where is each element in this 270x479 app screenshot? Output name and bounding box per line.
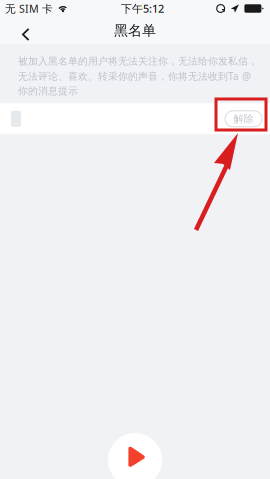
staticText: 解除 (233, 112, 253, 125)
button[interactable]: 返回 (0, 17, 45, 44)
staticText: 无 SIM 卡 (5, 1, 53, 16)
staticText: 黑名单 (114, 22, 156, 39)
staticText: 无法评论、喜欢、转采你的声音，你将无法收到Ta @ (18, 69, 251, 83)
staticText: 被加入黑名单的用户将无法关注你，无法给你发私信， (18, 55, 258, 67)
staticText: 下午5:12 (121, 1, 164, 16)
button[interactable]: 解除 (225, 111, 262, 127)
button[interactable]: 播放 (108, 433, 162, 479)
staticText: 你的消息提示 (18, 85, 78, 97)
